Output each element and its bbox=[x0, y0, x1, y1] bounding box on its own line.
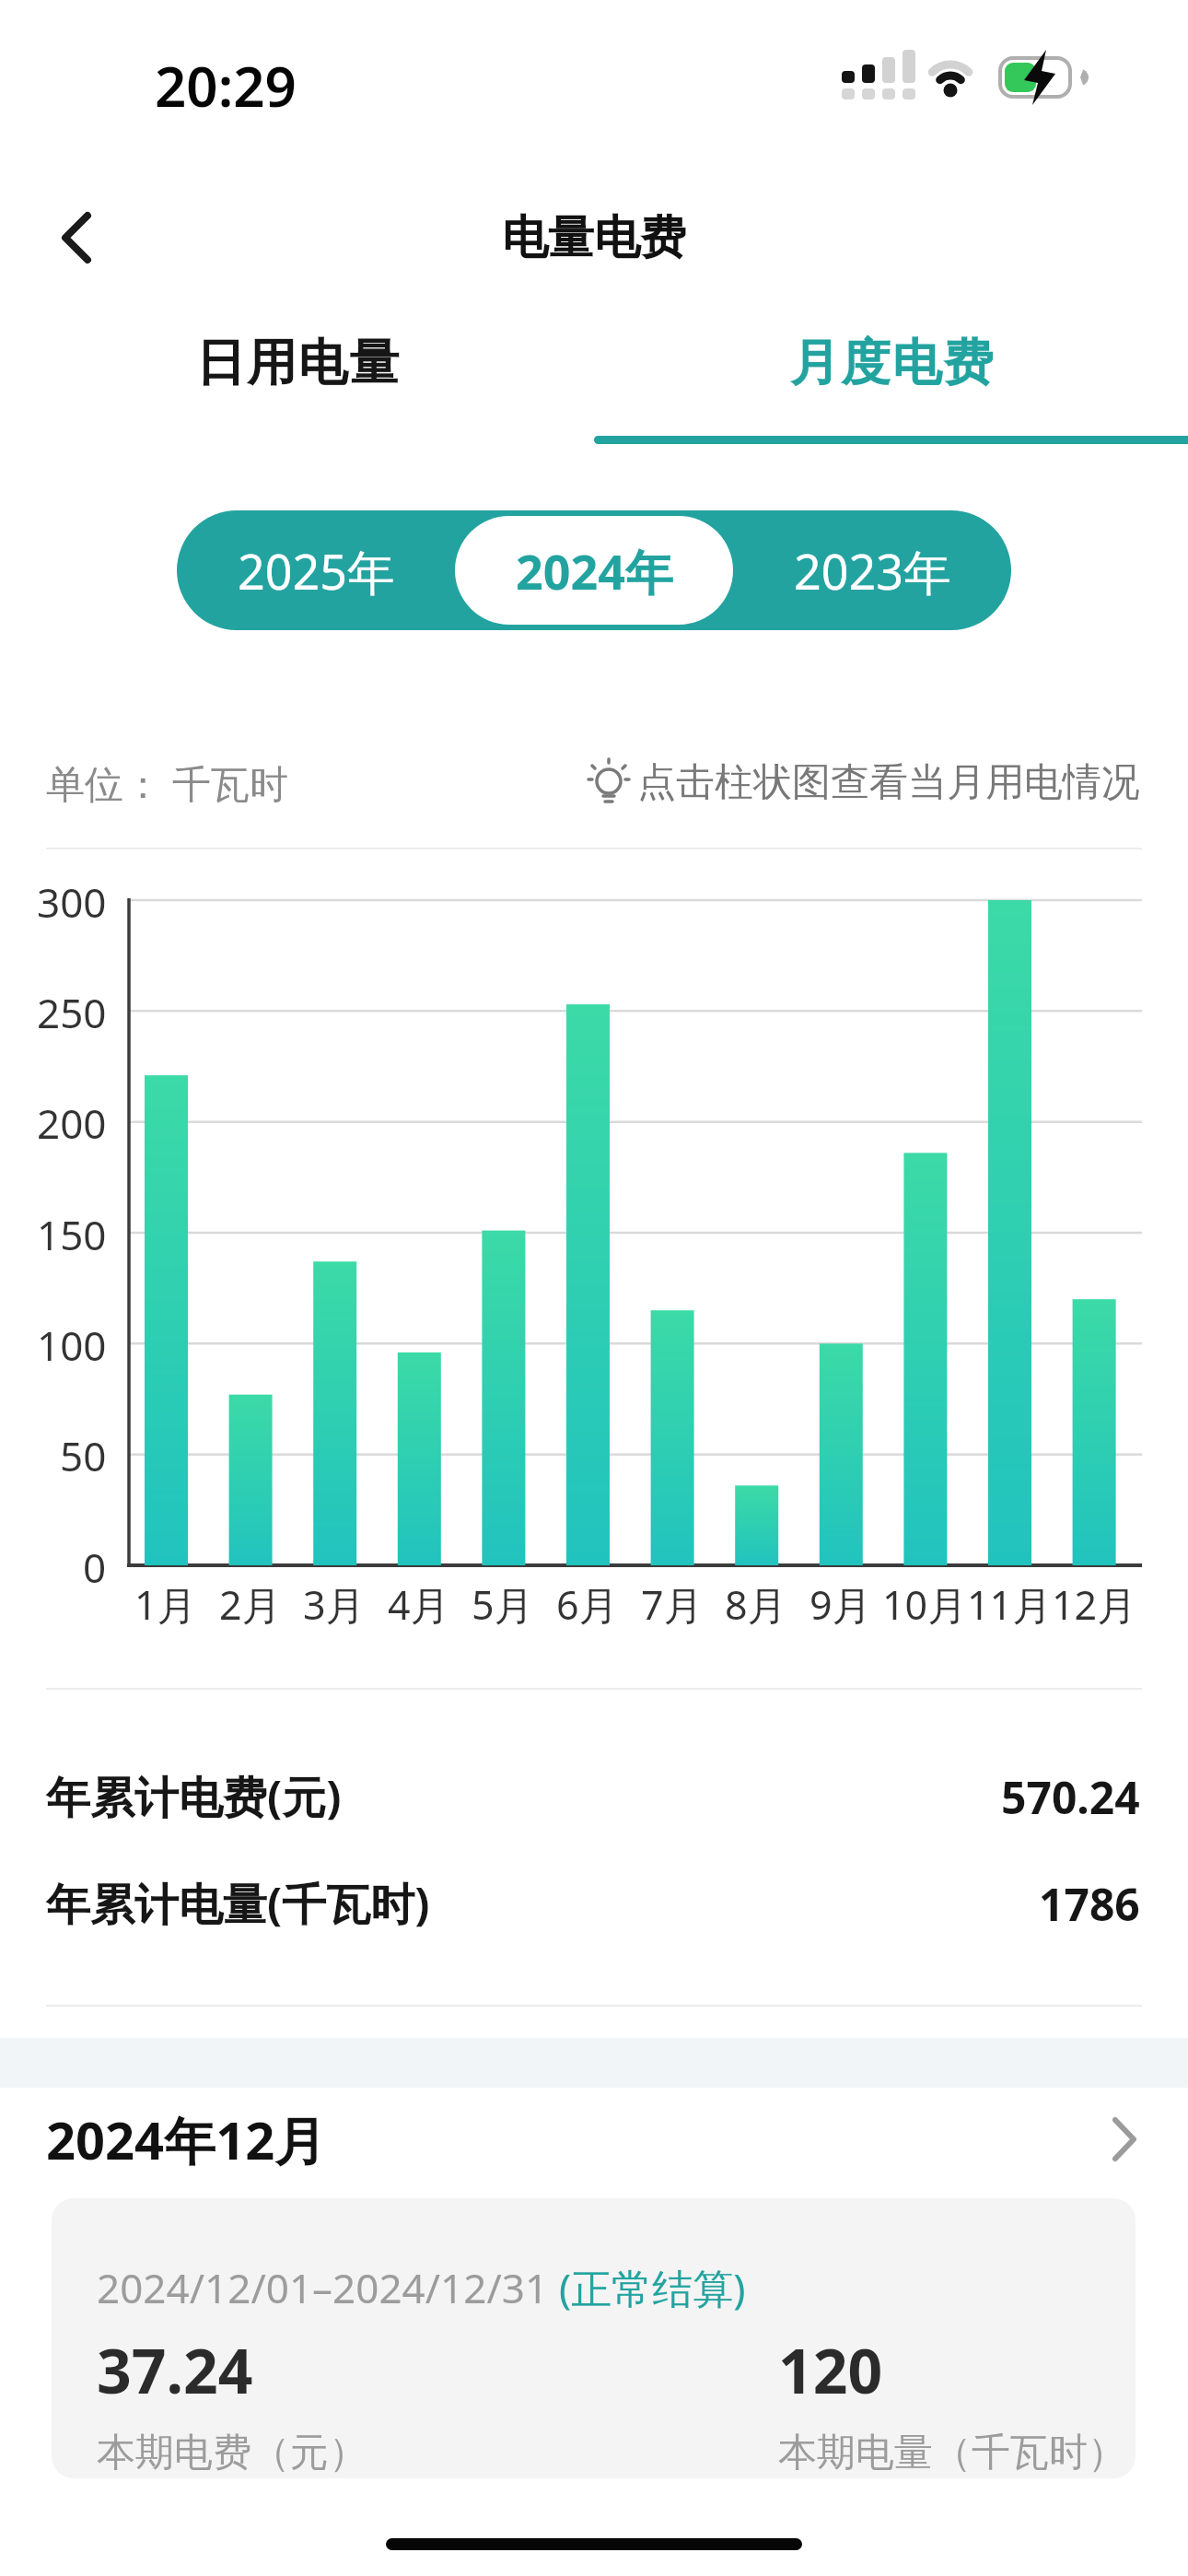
staticText: 2024年 bbox=[516, 538, 673, 603]
staticText: 5月 bbox=[472, 1577, 534, 1632]
staticText: 300 bbox=[37, 874, 107, 926]
staticText: 日用电量 bbox=[195, 332, 400, 394]
button[interactable]: 日用电量 bbox=[0, 324, 594, 402]
staticText: 2月 bbox=[219, 1577, 282, 1632]
staticText: 本期电费（元） bbox=[97, 2429, 367, 2477]
staticText: 37.24 bbox=[97, 2328, 253, 2411]
button[interactable]: 2023年 bbox=[733, 510, 1011, 630]
staticText: 100 bbox=[37, 1317, 107, 1369]
staticText: 2024/12/01–2024/12/31 bbox=[97, 2260, 559, 2315]
button[interactable]: 月度电费 bbox=[594, 324, 1188, 402]
staticText: 50 bbox=[60, 1428, 107, 1480]
staticText: 年累计电费(元) bbox=[46, 1766, 342, 1827]
staticText: 1月 bbox=[134, 1577, 197, 1632]
button[interactable] bbox=[46, 208, 105, 267]
staticText: 20:29 bbox=[155, 48, 297, 112]
button[interactable]: 2024年12月 bbox=[46, 2102, 1136, 2176]
button[interactable]: 2024年 bbox=[455, 516, 733, 625]
staticText: 150 bbox=[37, 1207, 107, 1259]
staticText: 点击柱状图查看当月用电情况 bbox=[637, 758, 1140, 807]
button[interactable]: 2024/12/01–2024/12/31 bbox=[52, 2198, 1136, 2478]
staticText: 11月 bbox=[967, 1577, 1053, 1632]
staticText: 1786 bbox=[1039, 1874, 1140, 1934]
staticText: 9月 bbox=[809, 1577, 872, 1632]
staticText: 250 bbox=[37, 985, 107, 1036]
staticText: 年累计电量(千瓦时) bbox=[46, 1873, 430, 1934]
staticText: 8月 bbox=[725, 1577, 787, 1632]
staticText: 2024年12月 bbox=[46, 2104, 327, 2174]
staticText: 0 bbox=[83, 1540, 107, 1591]
staticText: 200 bbox=[37, 1095, 107, 1147]
staticText: 10月 bbox=[882, 1577, 968, 1632]
staticText: 本期电量（千瓦时） bbox=[778, 2429, 1126, 2477]
staticText: 月度电费 bbox=[789, 332, 994, 394]
staticText: 单位： 千瓦时 bbox=[46, 756, 288, 809]
staticText: 4月 bbox=[388, 1577, 450, 1632]
staticText: 电量电费 bbox=[502, 209, 686, 267]
staticText: 3月 bbox=[303, 1577, 366, 1632]
staticText: 2023年 bbox=[794, 538, 951, 603]
staticText: 570.24 bbox=[1001, 1767, 1140, 1827]
staticText: 2025年 bbox=[238, 538, 395, 603]
staticText: 120 bbox=[778, 2328, 883, 2411]
staticText: 6月 bbox=[556, 1577, 619, 1632]
staticText: 7月 bbox=[641, 1577, 704, 1632]
staticText: 12月 bbox=[1052, 1577, 1137, 1632]
button[interactable]: 2025年 bbox=[177, 510, 455, 630]
staticText: (正常结算) bbox=[559, 2260, 746, 2315]
